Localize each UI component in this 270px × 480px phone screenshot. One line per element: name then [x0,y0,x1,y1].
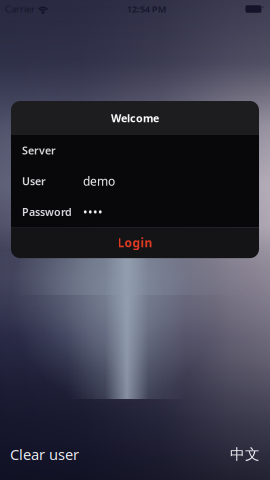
staticText: Server [22,143,56,157]
staticText: User [22,174,46,188]
staticText: Login [117,235,152,250]
staticText: 12:54 PM [127,3,167,15]
staticText: Welcome [111,111,159,125]
staticText: 中文 [230,445,260,463]
button[interactable]: Login [11,227,259,258]
staticText: •••• [83,204,103,220]
staticText: Carrier [5,3,35,15]
button[interactable]: 中文 [230,445,260,463]
staticText: Password [22,205,72,219]
button[interactable]: Clear user [10,444,79,464]
staticText: demo [83,173,115,189]
staticText: Clear user [10,444,79,464]
